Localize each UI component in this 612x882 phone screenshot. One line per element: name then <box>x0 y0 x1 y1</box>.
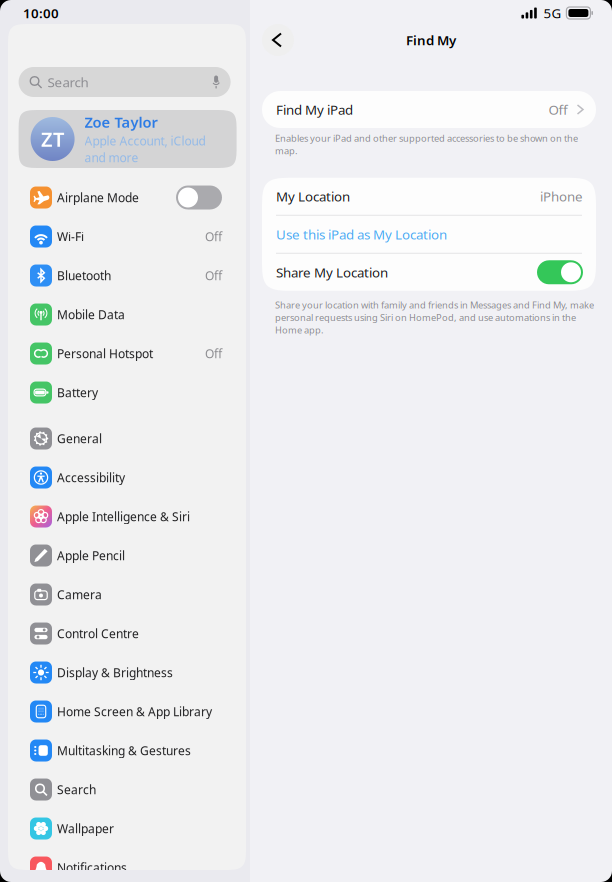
staticText: Find My iPad <box>276 101 353 118</box>
button[interactable]: Display & Brightness <box>8 653 246 692</box>
staticText: ZT <box>41 126 64 152</box>
button[interactable]: Find My iPad <box>250 91 596 128</box>
staticText: Apple Account, iCloud <box>85 133 206 149</box>
staticText: Off <box>205 267 222 283</box>
staticText: Airplane Mode <box>57 189 139 205</box>
button[interactable]: Personal Hotspot <box>8 334 246 373</box>
staticText: 5G <box>543 4 561 22</box>
staticText: Accessibility <box>57 469 125 485</box>
button[interactable]: Mobile Data <box>8 295 246 334</box>
button[interactable]: Back <box>262 24 294 56</box>
button[interactable]: Home Screen & App Library <box>8 692 246 731</box>
staticText: Home Screen & App Library <box>57 703 212 719</box>
staticText: Bluetooth <box>57 267 111 283</box>
staticText: Search <box>57 781 96 797</box>
button[interactable]: My Location <box>262 178 596 215</box>
staticText: Off <box>205 345 222 361</box>
staticText: Zoe Taylor <box>85 112 158 132</box>
staticText: Wi-Fi <box>57 228 84 244</box>
staticText: Share your location with family and frie… <box>275 299 594 336</box>
button[interactable]: Use this iPad as My Location <box>262 216 596 253</box>
button[interactable]: Wallpaper <box>8 809 246 848</box>
button[interactable]: Search <box>8 24 231 97</box>
button[interactable]: Share My Location <box>262 254 596 291</box>
button[interactable]: Search <box>8 770 246 809</box>
button[interactable]: ZT <box>8 97 237 168</box>
button[interactable]: Apple Intelligence & Siri <box>8 497 246 536</box>
button[interactable]: Airplane Mode <box>8 178 246 217</box>
staticText: Camera <box>57 586 102 602</box>
staticText: Enables your iPad and other supported ac… <box>275 132 578 157</box>
staticText: Display & Brightness <box>57 664 173 680</box>
staticText: Multitasking & Gestures <box>57 742 191 758</box>
staticText: Apple Pencil <box>57 547 125 563</box>
button[interactable]: Wi-Fi <box>8 217 246 256</box>
staticText: Notifications <box>57 859 127 875</box>
button[interactable]: Bluetooth <box>8 256 246 295</box>
staticText: Control Centre <box>57 625 139 641</box>
staticText: My Location <box>276 187 350 205</box>
staticText: and more <box>85 150 139 166</box>
button[interactable]: Apple Pencil <box>8 536 246 575</box>
button[interactable]: General <box>8 419 246 458</box>
staticText: Share My Location <box>276 263 388 281</box>
staticText: Search <box>48 73 89 91</box>
button[interactable]: Notifications <box>8 848 246 882</box>
staticText: Personal Hotspot <box>57 345 153 361</box>
button[interactable]: Battery <box>8 373 246 412</box>
staticText: 10:00 <box>23 4 59 22</box>
button[interactable]: Camera <box>8 575 246 614</box>
staticText: Battery <box>57 384 98 400</box>
button[interactable]: Accessibility <box>8 458 246 497</box>
staticText: iPhone <box>540 187 583 205</box>
staticText: Use this iPad as My Location <box>276 225 447 243</box>
button[interactable]: Control Centre <box>8 614 246 653</box>
staticText: Mobile Data <box>57 306 125 322</box>
button[interactable]: Multitasking & Gestures <box>8 731 246 770</box>
staticText: Apple Intelligence & Siri <box>57 508 190 524</box>
staticText: General <box>57 430 102 446</box>
staticText: Off <box>205 228 222 244</box>
staticText: Wallpaper <box>57 820 114 836</box>
staticText: Off <box>548 101 567 118</box>
staticText: Find My <box>406 31 456 49</box>
